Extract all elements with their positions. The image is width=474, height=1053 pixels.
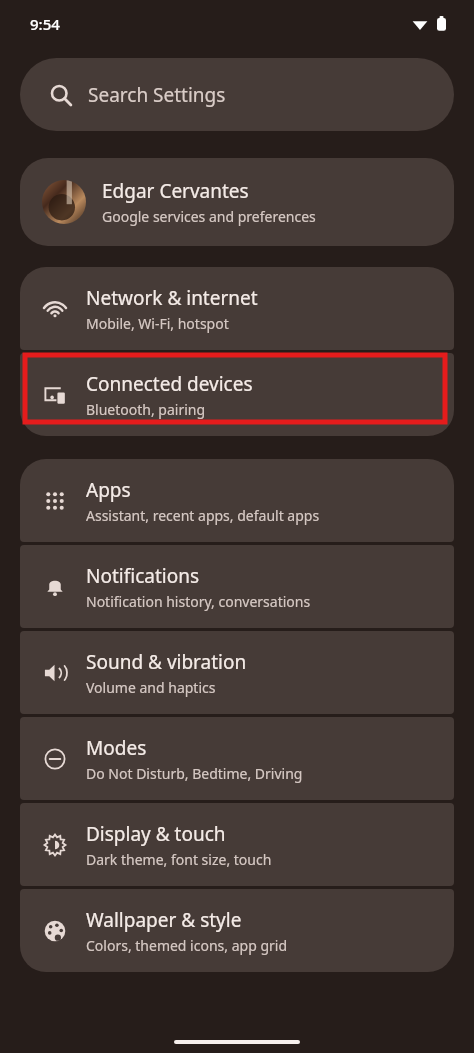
staticText: Wallpaper & style [86, 907, 242, 933]
button[interactable]: Notifications [20, 545, 454, 628]
staticText: Colors, themed icons, app grid [86, 936, 287, 955]
staticText: Modes [86, 735, 147, 761]
button[interactable]: Connected devices [20, 353, 454, 436]
other: Sound and vibration [43, 661, 67, 685]
other: Notifications [43, 575, 67, 599]
staticText: Volume and haptics [86, 678, 216, 697]
button[interactable]: Sound and vibration [20, 631, 454, 714]
staticText: 9:54 [30, 14, 60, 34]
staticText: Assistant, recent apps, default apps [86, 506, 320, 525]
other: Modes [43, 747, 67, 771]
other: Apps [43, 489, 67, 513]
staticText: Mobile, Wi-Fi, hotspot [86, 314, 229, 333]
other: Connected devices [43, 383, 67, 407]
staticText: Edgar Cervantes [102, 178, 249, 204]
other: Wallpaper and style [43, 919, 67, 943]
button[interactable]: Apps [20, 459, 454, 542]
button[interactable]: Edgar Cervantes [20, 158, 454, 246]
staticText: Network & internet [86, 285, 258, 311]
staticText: Bluetooth, pairing [86, 400, 206, 419]
button[interactable]: Search Settings [20, 58, 454, 131]
button[interactable]: Modes [20, 717, 454, 800]
button[interactable]: Wallpaper and style [20, 889, 454, 972]
other: Display and touch [43, 833, 67, 857]
staticText: Sound & vibration [86, 649, 247, 675]
staticText: Connected devices [86, 371, 253, 397]
staticText: Search Settings [88, 82, 226, 108]
other: Network [43, 297, 67, 321]
button[interactable]: Network [20, 267, 454, 350]
staticText: Display & touch [86, 821, 226, 847]
staticText: Google services and preferences [102, 207, 316, 226]
staticText: Do Not Disturb, Bedtime, Driving [86, 764, 303, 783]
staticText: Dark theme, font size, touch [86, 850, 272, 869]
button[interactable]: Display and touch [20, 803, 454, 886]
staticText: Apps [86, 477, 131, 503]
staticText: Notifications [86, 563, 200, 589]
staticText: Notification history, conversations [86, 592, 311, 611]
